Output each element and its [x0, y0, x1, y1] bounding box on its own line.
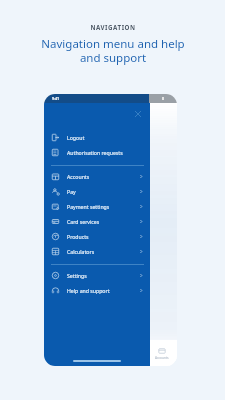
staticText: Card services — [67, 218, 100, 225]
button[interactable]: Pay — [44, 184, 150, 199]
button[interactable]: Calculators — [44, 244, 150, 259]
button[interactable]: Help and support — [44, 283, 150, 298]
staticText: Accounts — [67, 173, 90, 180]
button[interactable]: Payment settings — [44, 199, 150, 214]
staticText: Navigation menu and help and support — [41, 36, 185, 66]
button[interactable]: Accounts tab — [147, 340, 177, 366]
button[interactable]: Authorisation requests — [44, 145, 150, 160]
staticText: Products — [67, 233, 89, 240]
button[interactable]: Accounts — [44, 169, 150, 184]
staticText: Help and support — [67, 287, 110, 294]
staticText: Settings — [67, 272, 87, 279]
staticText: Authorisation requests — [67, 149, 123, 156]
staticText: Payment settings — [67, 203, 110, 210]
button[interactable]: Card services — [44, 214, 150, 229]
button[interactable]: Logout — [44, 130, 150, 145]
staticText: Accounts — [155, 356, 169, 360]
staticText: Pay — [67, 188, 76, 195]
button[interactable]: Close menu — [133, 109, 143, 119]
button[interactable]: Settings — [44, 268, 150, 283]
staticText: NAVIGATION — [90, 23, 136, 31]
staticText: Logout — [67, 134, 85, 141]
staticText: Calculators — [67, 248, 95, 255]
button[interactable]: Products — [44, 229, 150, 244]
staticText: 9:41 — [52, 96, 60, 101]
